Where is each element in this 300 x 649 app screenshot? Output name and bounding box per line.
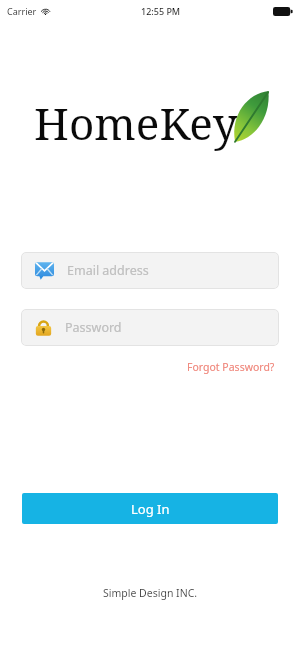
- staticText: Forgot Password?: [187, 360, 275, 374]
- staticText: Password: [65, 319, 122, 336]
- button[interactable]: Email address: [21, 252, 279, 289]
- button[interactable]: Forgot Password?: [184, 357, 278, 377]
- button[interactable]: Log In: [22, 493, 278, 524]
- button[interactable]: Password: [21, 309, 279, 346]
- staticText: HomeKey: [34, 93, 238, 153]
- staticText: 12:55 PM: [141, 5, 181, 17]
- staticText: Log In: [131, 500, 170, 518]
- staticText: Simple Design INC.: [103, 586, 198, 600]
- staticText: Carrier: [7, 5, 37, 17]
- staticText: Email address: [67, 262, 149, 279]
